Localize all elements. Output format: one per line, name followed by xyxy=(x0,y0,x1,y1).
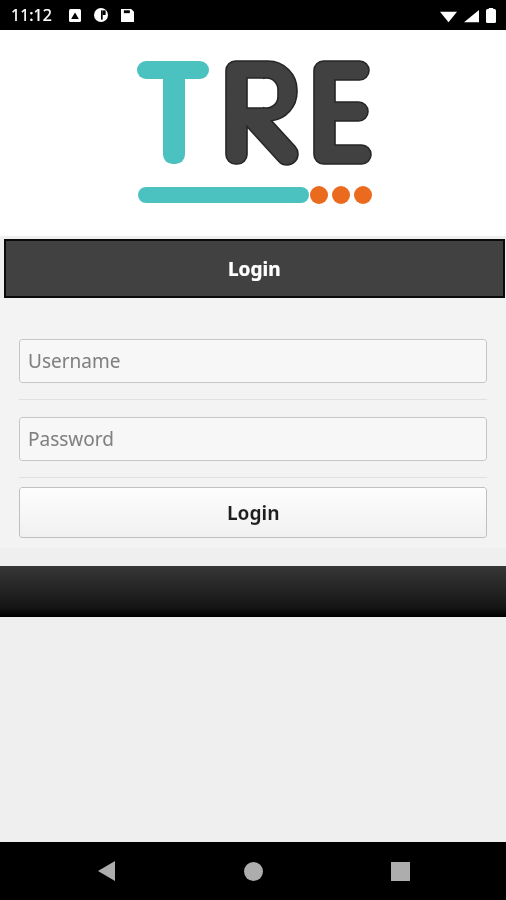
button[interactable]: Login xyxy=(6,241,503,296)
button[interactable]: Login xyxy=(19,487,487,538)
staticText: 11:12 xyxy=(11,4,52,26)
staticText: Password xyxy=(28,426,114,452)
staticText: Username xyxy=(28,348,121,374)
button[interactable]: Back xyxy=(85,850,127,892)
button[interactable]: Recent apps xyxy=(379,850,421,892)
staticText: Login xyxy=(228,256,281,282)
button[interactable]: Password xyxy=(19,417,487,461)
staticText: Login xyxy=(227,500,280,526)
button[interactable]: Username xyxy=(19,339,487,383)
button[interactable]: Home xyxy=(232,850,274,892)
